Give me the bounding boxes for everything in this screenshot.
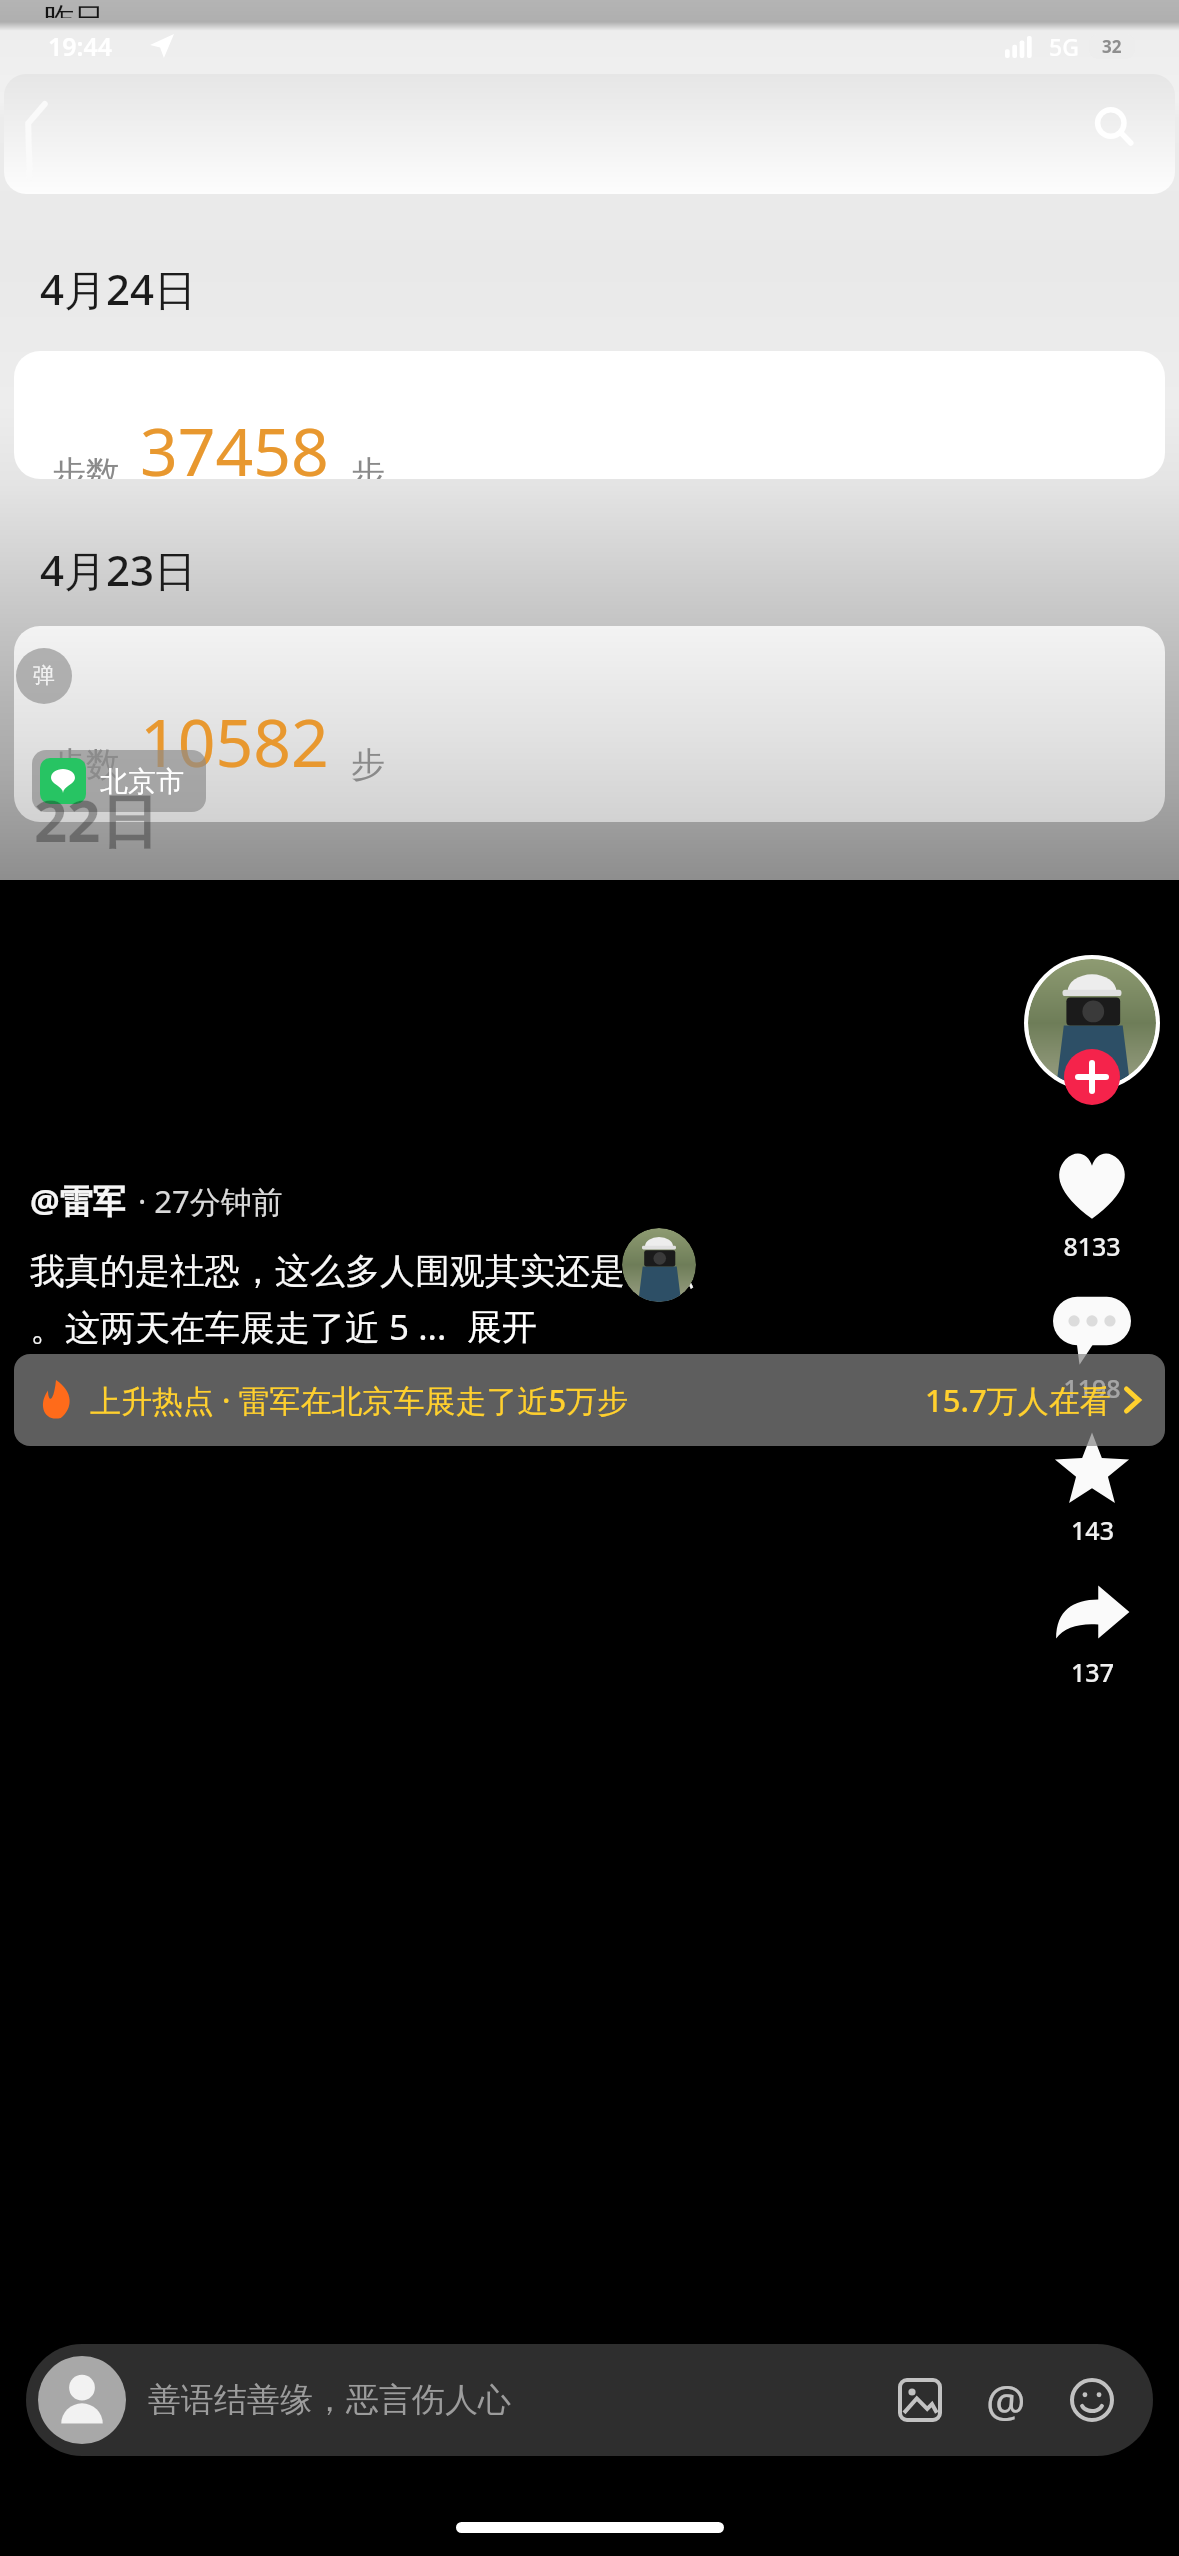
button[interactable]: 关注 bbox=[1064, 1049, 1120, 1105]
staticText: 4月23日 bbox=[40, 541, 197, 598]
staticText: 4月24日 bbox=[40, 260, 197, 317]
staticText: 。这两天在车展走了近 5 ... bbox=[30, 1303, 447, 1351]
staticText: 步数 bbox=[52, 452, 120, 479]
staticText: 143 bbox=[1071, 1513, 1114, 1547]
button[interactable]: 点赞 bbox=[1032, 1147, 1152, 1263]
staticText: 1198 bbox=[1063, 1371, 1121, 1405]
staticText: 19:44 bbox=[48, 29, 113, 63]
staticText: 上升热点 · 雷军在北京车展走了近5万步 bbox=[90, 1379, 629, 1421]
staticText: 步 bbox=[351, 452, 385, 479]
staticText: 善语结善缘，恶言伤人心 bbox=[148, 2379, 511, 2421]
button[interactable]: 展开 bbox=[467, 1305, 537, 1349]
button[interactable]: Search bbox=[1083, 96, 1145, 158]
button[interactable]: 用户头像 bbox=[1028, 959, 1156, 1087]
staticText: 37458 bbox=[140, 405, 329, 479]
button[interactable]: 步数 bbox=[14, 626, 1165, 822]
staticText: 昨日 bbox=[44, 0, 104, 18]
staticText: @ bbox=[986, 2370, 1026, 2430]
button[interactable]: 善语结善缘，恶言伤人心 bbox=[26, 2344, 1153, 2456]
staticText: 5G bbox=[1049, 31, 1079, 62]
staticText: · 27分钟前 bbox=[138, 1180, 283, 1222]
button[interactable]: 上升热点 · 雷军在北京车展走了近5万步 bbox=[14, 1354, 1165, 1446]
staticText: 22日 bbox=[34, 780, 159, 859]
button[interactable]: 图片 bbox=[889, 2369, 951, 2431]
button[interactable]: 弹幕 bbox=[16, 648, 72, 704]
button[interactable]: 北京市 bbox=[32, 750, 206, 812]
button[interactable]: 提及 bbox=[975, 2369, 1037, 2431]
button[interactable]: @雷军 bbox=[30, 1178, 126, 1223]
staticText: 8133 bbox=[1063, 1229, 1121, 1263]
button[interactable]: 评论 bbox=[1032, 1289, 1152, 1405]
button[interactable]: 表情 bbox=[1061, 2369, 1123, 2431]
button[interactable]: 步数 bbox=[14, 351, 1165, 479]
button[interactable]: 收藏 bbox=[1032, 1431, 1152, 1547]
staticText: 137 bbox=[1071, 1655, 1114, 1689]
button[interactable]: 分享 bbox=[1032, 1573, 1152, 1689]
button[interactable]: 作者头像 bbox=[622, 1228, 696, 1302]
staticText: 32 bbox=[1102, 35, 1122, 58]
staticText: 10582 bbox=[140, 696, 329, 786]
staticText: 步 bbox=[351, 743, 385, 786]
staticText: 我真的是社恐，这么多人围观其实还是有点 bbox=[30, 1249, 695, 1293]
staticText: 北京市 bbox=[100, 764, 184, 799]
staticText: 15.7万人在看 bbox=[925, 1379, 1111, 1421]
staticText: 步数 bbox=[52, 743, 120, 786]
staticText: 弹 bbox=[33, 662, 55, 690]
